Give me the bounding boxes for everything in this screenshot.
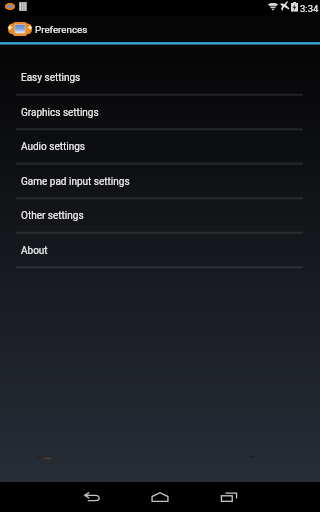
button[interactable]: Recents — [212, 482, 246, 512]
button[interactable]: Game pad input settings — [0, 164, 320, 199]
button[interactable]: About — [0, 233, 320, 268]
button[interactable]: Graphics settings — [0, 95, 320, 130]
button[interactable]: Audio settings — [0, 129, 320, 164]
staticText: Other settings — [21, 210, 84, 222]
button[interactable]: Back — [75, 482, 109, 512]
staticText: Easy settings — [21, 72, 81, 84]
staticText: Game pad input settings — [21, 176, 130, 188]
button[interactable]: Easy settings — [0, 60, 320, 95]
button[interactable]: Home — [143, 482, 177, 512]
staticText: About — [21, 245, 48, 257]
staticText: Preferences — [35, 24, 88, 35]
staticText: 3:34 — [300, 3, 319, 14]
button[interactable]: Other settings — [0, 198, 320, 233]
staticText: Graphics settings — [21, 107, 99, 119]
staticText: Audio settings — [21, 141, 85, 153]
